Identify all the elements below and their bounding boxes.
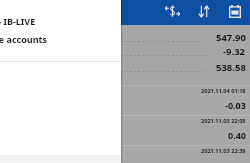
button[interactable]: 2021.11.04 01:18 (0, 85, 250, 114)
staticText: -0.03 (225, 99, 246, 111)
staticText: 0.40 (228, 129, 246, 141)
staticText: 538.58 (216, 61, 246, 74)
button[interactable]: Sort (193, 0, 215, 22)
staticText: Manage accounts (0, 33, 47, 45)
staticText: 2021.11.03 22:08 (201, 117, 246, 125)
button[interactable]: 2021.11.03 22:08 (0, 115, 250, 144)
button[interactable]: 2021.11.03 22:38 (0, 145, 250, 163)
staticText: 547.90 (216, 31, 246, 44)
staticText: U1234567 - IB-LIVE (0, 15, 36, 27)
staticText: -9.32 (223, 45, 246, 58)
button[interactable]: Currency exchange (161, 0, 183, 22)
staticText: 2021.11.04 01:18 (201, 87, 246, 95)
staticText: 2021.11.03 22:38 (201, 147, 246, 155)
button[interactable]: Calendar (224, 0, 246, 22)
